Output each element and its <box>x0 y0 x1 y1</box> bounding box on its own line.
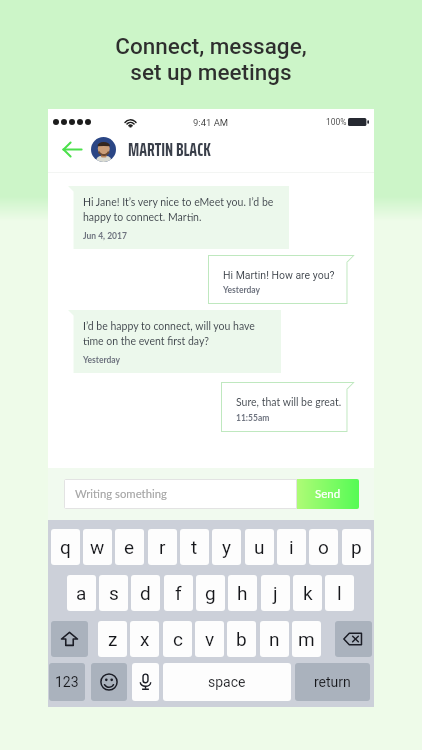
staticText: d <box>140 582 151 604</box>
button[interactable]: b <box>227 621 256 657</box>
staticText: f <box>175 582 182 604</box>
staticText: m <box>298 628 315 650</box>
staticText: k <box>303 582 313 604</box>
button[interactable]: k <box>293 575 322 611</box>
button[interactable]: o <box>309 529 338 565</box>
staticText: j <box>273 582 278 604</box>
button[interactable]: j <box>261 575 290 611</box>
staticText: o <box>318 536 329 558</box>
staticText: 9:41 AM <box>193 117 229 128</box>
button[interactable]: n <box>260 621 289 657</box>
button[interactable]: l <box>325 575 354 611</box>
staticText: 123 <box>55 674 79 690</box>
button[interactable]: g <box>196 575 225 611</box>
staticText: z <box>108 628 118 650</box>
staticText: I’d be happy to connect, will you have t… <box>83 320 255 348</box>
button[interactable]: m <box>292 621 321 657</box>
staticText: v <box>205 628 215 650</box>
staticText: h <box>237 582 248 604</box>
button[interactable]: d <box>131 575 160 611</box>
button[interactable]: 123 <box>49 663 85 701</box>
button[interactable]: Backspace <box>335 621 372 657</box>
staticText: t <box>191 536 198 558</box>
button[interactable]: q <box>51 529 80 565</box>
staticText: MARTIN BLACK <box>128 135 211 161</box>
staticText: space <box>208 674 246 690</box>
button[interactable]: Emoji <box>91 663 127 701</box>
staticText: c <box>173 628 183 650</box>
button[interactable]: f <box>164 575 193 611</box>
button[interactable]: h <box>228 575 257 611</box>
button[interactable]: a <box>67 575 96 611</box>
button[interactable]: p <box>342 529 371 565</box>
staticText: Send <box>315 487 341 501</box>
button[interactable]: Send <box>297 479 359 509</box>
button[interactable]: Writing something <box>64 479 297 509</box>
button[interactable]: u <box>245 529 274 565</box>
button[interactable]: w <box>83 529 112 565</box>
button[interactable]: Hi Martin! How are you? <box>208 255 355 304</box>
staticText: s <box>109 582 119 604</box>
button[interactable]: r <box>148 529 177 565</box>
button[interactable]: y <box>212 529 241 565</box>
staticText: x <box>140 628 150 650</box>
button[interactable]: Dictate <box>132 663 159 701</box>
button[interactable]: return <box>295 663 370 701</box>
staticText: u <box>254 536 265 558</box>
button[interactable]: t <box>180 529 209 565</box>
staticText: set up meetings <box>130 59 292 85</box>
button[interactable]: Back <box>57 134 87 164</box>
staticText: return <box>314 674 351 690</box>
staticText: 100% <box>326 117 347 127</box>
button[interactable]: i <box>277 529 306 565</box>
staticText: Hi Jane! It’s very nice to eMeet you. I’… <box>83 196 274 224</box>
button[interactable]: I’d be happy to connect, will you have t… <box>68 310 281 373</box>
staticText: w <box>90 536 105 558</box>
button[interactable]: v <box>195 621 224 657</box>
staticText: Connect, message, <box>115 33 307 59</box>
staticText: n <box>269 628 280 650</box>
staticText: Yesterday <box>223 285 261 295</box>
staticText: g <box>205 582 216 604</box>
button[interactable]: Hi Jane! It’s very nice to eMeet you. I’… <box>68 186 289 249</box>
button[interactable]: s <box>99 575 128 611</box>
staticText: e <box>124 536 135 558</box>
staticText: p <box>351 536 362 558</box>
staticText: Hi Martin! How are you? <box>223 269 335 281</box>
button[interactable]: Shift <box>51 621 88 657</box>
staticText: a <box>76 582 87 604</box>
button[interactable]: Sure, that will be great. <box>221 382 355 432</box>
button[interactable]: x <box>130 621 159 657</box>
button[interactable]: space <box>163 663 291 701</box>
staticText: Jun 4, 2017 <box>83 231 127 241</box>
staticText: l <box>337 582 342 604</box>
button[interactable]: c <box>163 621 192 657</box>
staticText: 11:55am <box>236 413 270 423</box>
staticText: Writing something <box>75 487 167 501</box>
staticText: q <box>60 536 71 558</box>
staticText: i <box>289 536 294 558</box>
staticText: y <box>222 536 231 558</box>
button[interactable]: e <box>115 529 144 565</box>
staticText: Yesterday <box>83 355 121 365</box>
button[interactable]: z <box>98 621 127 657</box>
staticText: r <box>159 536 166 558</box>
staticText: Sure, that will be great. <box>236 396 342 409</box>
staticText: b <box>236 628 247 650</box>
